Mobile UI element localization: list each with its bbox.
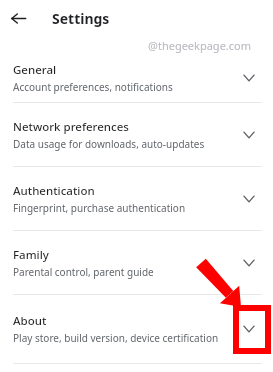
staticText: Play store, build version, device certif… [13,331,219,345]
staticText: Fingerprint, purchase authentication [13,201,186,215]
button[interactable]: Back [4,4,32,32]
button[interactable]: About [0,295,273,363]
staticText: Parental control, parent guide [13,265,154,279]
button[interactable]: Expand Authentication [233,183,265,215]
button[interactable]: Expand About [233,313,265,345]
button[interactable]: General [0,53,273,102]
button[interactable]: Expand Network preferences [233,119,265,151]
staticText: General [13,62,57,78]
staticText: Settings [52,9,110,28]
staticText: About [13,313,47,329]
button[interactable]: Authentication [0,167,273,230]
button[interactable]: Expand General [233,62,265,94]
staticText: Network preferences [13,119,129,135]
staticText: Data usage for downloads, auto-updates [13,137,205,151]
staticText: Authentication [13,183,95,199]
button[interactable]: Network preferences [0,103,273,166]
button[interactable]: Expand Family [233,247,265,279]
staticText: Family [13,247,49,263]
staticText: @thegeekpage.com [148,38,251,53]
button[interactable]: Family [0,231,273,294]
staticText: Account preferences, notifications [13,80,173,94]
